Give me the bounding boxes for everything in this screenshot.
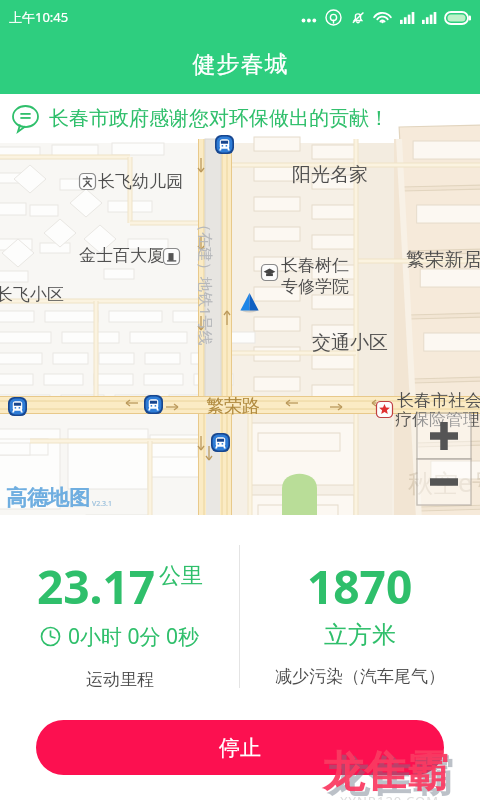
staticText: 专修学院 bbox=[281, 276, 349, 297]
staticText: XYNR120.COM bbox=[340, 792, 439, 800]
staticText: 23.17 bbox=[37, 555, 156, 618]
staticText: 繁荣新居 bbox=[406, 248, 480, 272]
staticText: 立方米 bbox=[324, 620, 396, 650]
staticText: 长春市社会区 bbox=[397, 390, 480, 411]
staticText: 疗保险管理局 bbox=[395, 409, 480, 430]
staticText: 减少污染（汽车尾气） bbox=[275, 666, 445, 687]
staticText: 长春市政府感谢您对环保做出的贡献！ bbox=[49, 106, 389, 131]
staticText: 繁荣路 bbox=[206, 395, 260, 418]
staticText: 阳光名家 bbox=[292, 163, 368, 187]
staticText: 长飞小区 bbox=[0, 284, 64, 305]
button[interactable]: Zoom out bbox=[417, 459, 471, 505]
staticText: 停止 bbox=[219, 735, 261, 761]
staticText: 高德地图 bbox=[6, 485, 90, 511]
staticText: 龙隹霸 bbox=[327, 751, 453, 800]
staticText: 上午10:45 bbox=[9, 8, 69, 26]
button[interactable]: 停止 bbox=[36, 720, 444, 775]
staticText: 长飞幼儿园 bbox=[98, 171, 183, 192]
staticText: V2.3.1 bbox=[92, 499, 112, 509]
button[interactable]: 长春市政府感谢您对环保做出的贡献！ bbox=[0, 94, 480, 143]
staticText: （在建）地铁1号线 bbox=[196, 217, 216, 346]
staticText: 1870 bbox=[307, 555, 413, 618]
staticText: 公里 bbox=[159, 562, 203, 590]
staticText: 健步春城 bbox=[192, 50, 288, 79]
staticText: 秋空e号 bbox=[408, 465, 480, 499]
staticText: 长春树仁 bbox=[281, 255, 349, 276]
staticText: 0小时 0分 0秒 bbox=[68, 622, 199, 651]
staticText: 龙隹霸 bbox=[322, 746, 448, 799]
staticText: 运动里程 bbox=[86, 669, 154, 690]
staticText: 交通小区 bbox=[312, 331, 388, 355]
button[interactable]: Zoom in bbox=[417, 413, 471, 459]
staticText: 金士百大厦 bbox=[79, 245, 164, 266]
